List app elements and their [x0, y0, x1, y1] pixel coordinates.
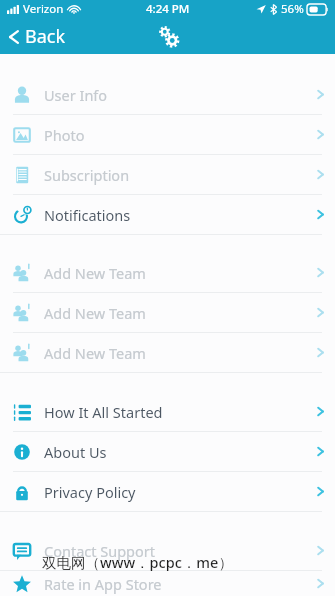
- button[interactable]: Subscription: [0, 155, 335, 194]
- button[interactable]: Contact Support: [0, 531, 335, 570]
- button[interactable]: Settings: [150, 18, 186, 54]
- staticText: Contact Support: [44, 541, 305, 561]
- staticText: Photo: [44, 125, 305, 145]
- staticText: 56%: [281, 1, 304, 17]
- staticText: Add New Team: [44, 343, 305, 363]
- staticText: About Us: [44, 442, 305, 462]
- staticText: Add New Team: [44, 303, 305, 323]
- button[interactable]: About Us: [0, 432, 335, 471]
- button[interactable]: Add New Team: [0, 253, 335, 292]
- button[interactable]: Back: [0, 19, 78, 54]
- button[interactable]: How It All Started: [0, 392, 335, 431]
- staticText: 双电网（www．pcpc．me）: [42, 552, 233, 572]
- staticText: Add New Team: [44, 263, 305, 283]
- button[interactable]: User Info: [0, 75, 335, 114]
- staticText: Rate in App Store: [44, 574, 305, 594]
- staticText: User Info: [44, 85, 305, 105]
- staticText: 4:24 PM: [146, 1, 190, 17]
- staticText: Back: [25, 24, 66, 49]
- staticText: Subscription: [44, 165, 305, 185]
- staticText: Privacy Policy: [44, 482, 305, 502]
- staticText: Notifications: [44, 205, 305, 225]
- button[interactable]: Add New Team: [0, 293, 335, 332]
- staticText: Verizon: [23, 1, 64, 17]
- button[interactable]: Add New Team: [0, 333, 335, 372]
- staticText: How It All Started: [44, 402, 305, 422]
- button[interactable]: Privacy Policy: [0, 472, 335, 511]
- button[interactable]: Photo: [0, 115, 335, 154]
- button[interactable]: Rate in App Store: [0, 571, 335, 596]
- button[interactable]: Notifications: [0, 195, 335, 234]
